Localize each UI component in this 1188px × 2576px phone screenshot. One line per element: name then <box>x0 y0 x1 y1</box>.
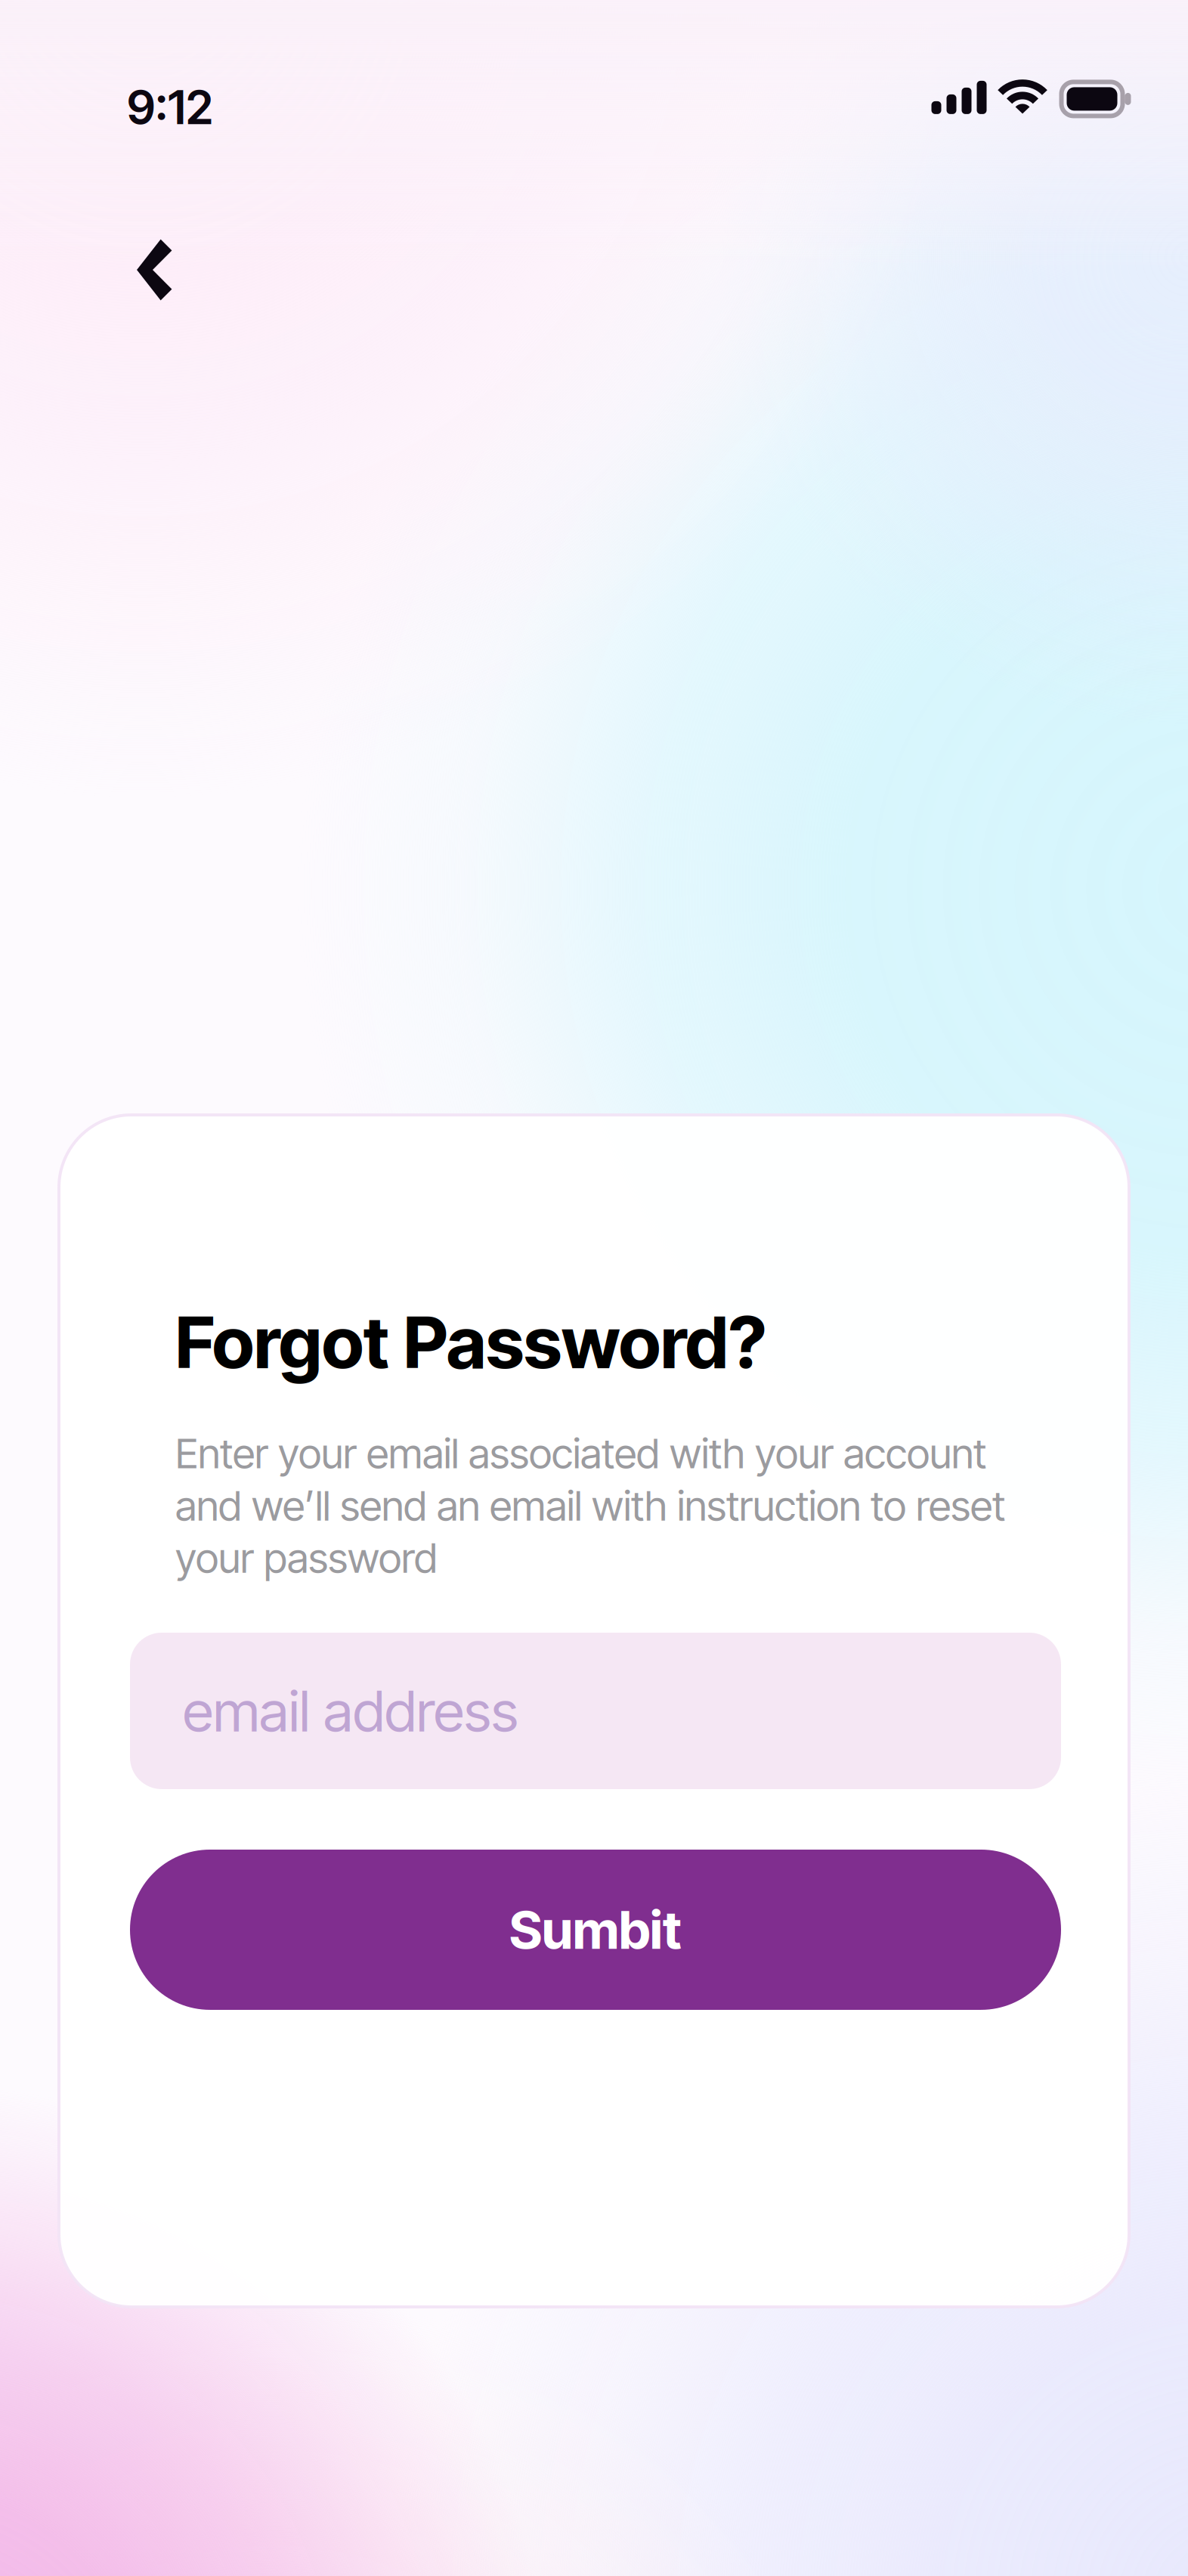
staticText: 9:12 <box>127 79 213 135</box>
button[interactable]: Sumbit <box>59 1850 1061 2010</box>
button[interactable]: Back <box>0 225 211 314</box>
staticText: email address <box>183 1677 518 1745</box>
staticText: Enter your email associated with your ac… <box>175 1428 1005 1583</box>
staticText: Forgot Password? <box>175 1299 766 1385</box>
staticText: Sumbit <box>509 1898 682 1961</box>
